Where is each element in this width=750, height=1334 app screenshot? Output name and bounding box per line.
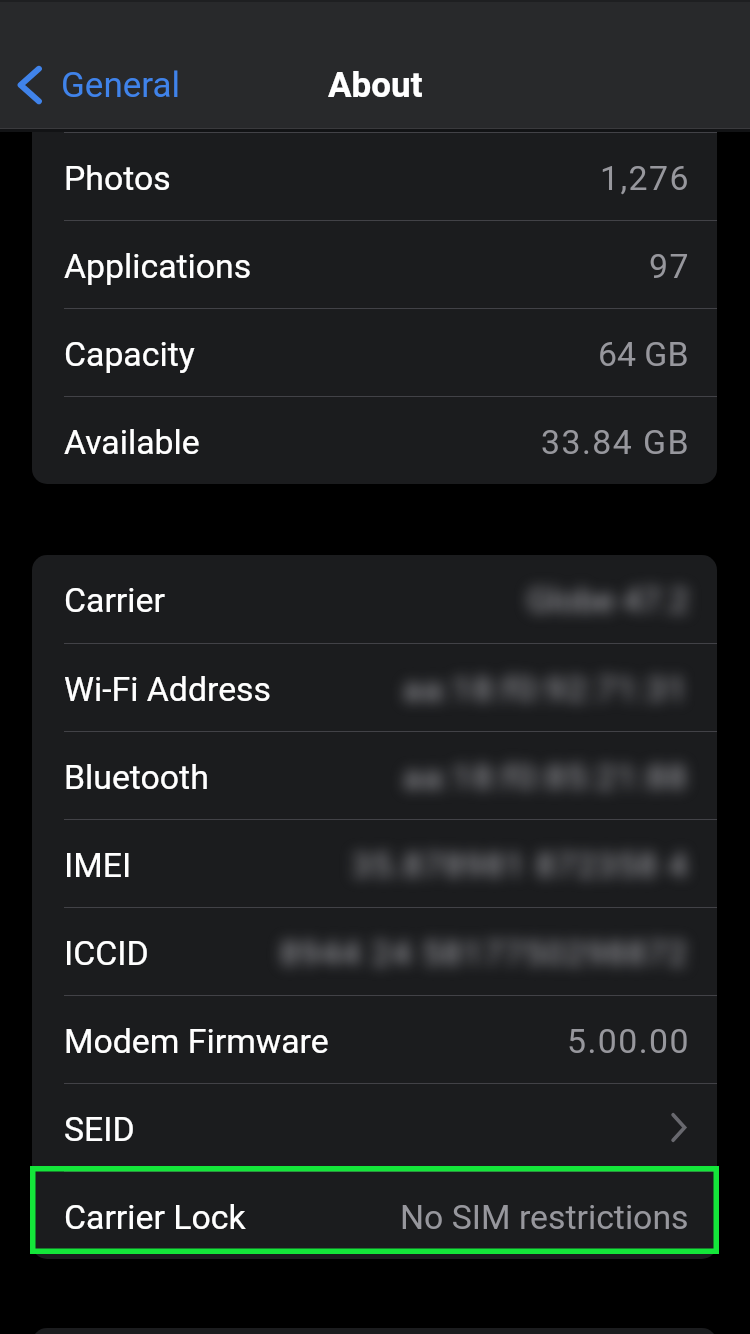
- staticText: Globe 47.2: [527, 581, 689, 621]
- button[interactable]: Bluetooth: [32, 732, 717, 819]
- button[interactable]: SEID: [32, 1084, 717, 1171]
- staticText: Bluetooth: [64, 758, 209, 798]
- staticText: Wi-Fi Address: [64, 670, 271, 710]
- staticText: 64 GB: [598, 335, 689, 375]
- staticText: aa:18:f0:92:71:31: [403, 670, 689, 710]
- button[interactable]: Carrier Lock: [32, 1172, 717, 1259]
- staticText: Applications: [64, 247, 252, 287]
- staticText: About: [328, 65, 423, 106]
- staticText: Modem Firmware: [64, 1022, 329, 1062]
- button[interactable]: IMEI: [32, 820, 717, 907]
- button[interactable]: ICCID: [32, 908, 717, 995]
- button[interactable]: Capacity: [32, 309, 717, 396]
- staticText: Carrier Lock: [64, 1198, 246, 1238]
- button[interactable]: Back to General: [17, 64, 181, 106]
- staticText: 35.878981 872358 4: [352, 846, 689, 886]
- staticText: 1,276: [600, 159, 690, 199]
- staticText: ICCID: [64, 934, 149, 974]
- staticText: Capacity: [64, 335, 195, 375]
- staticText: Available: [64, 423, 200, 463]
- button[interactable]: Carrier: [32, 555, 717, 643]
- staticText: 8944 24 5817750298872: [280, 934, 689, 974]
- button[interactable]: Wi-Fi Address: [32, 644, 717, 731]
- button[interactable]: Photos: [32, 133, 717, 220]
- staticText: General: [61, 65, 181, 106]
- other: More: [670, 1113, 687, 1142]
- staticText: 97: [649, 247, 690, 287]
- staticText: 33.84 GB: [541, 423, 690, 463]
- staticText: SEID: [64, 1110, 135, 1150]
- staticText: IMEI: [64, 846, 132, 886]
- staticText: aa:18:f0:85:21:88: [403, 758, 689, 798]
- button[interactable]: Modem Firmware: [32, 996, 717, 1083]
- button[interactable]: Applications: [32, 221, 717, 308]
- staticText: 5.00.00: [567, 1022, 690, 1062]
- staticText: Carrier: [64, 581, 165, 621]
- staticText: Photos: [64, 159, 171, 199]
- staticText: No SIM restrictions: [400, 1198, 689, 1238]
- button[interactable]: Available: [32, 397, 717, 484]
